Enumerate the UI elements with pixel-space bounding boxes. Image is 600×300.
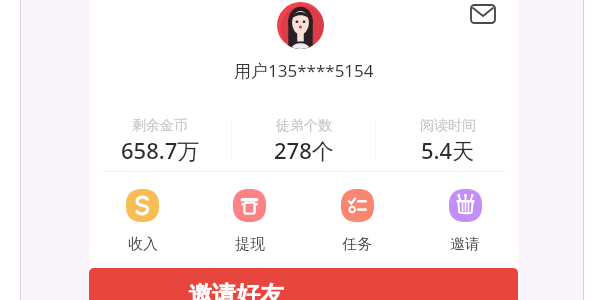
staticText: 658.7万 xyxy=(121,135,200,165)
button[interactable]: 任务 xyxy=(303,189,411,254)
staticText: 278个 xyxy=(274,135,334,165)
staticText: 阅读时间 xyxy=(420,117,476,135)
staticText: 邀请好友 xyxy=(188,280,284,300)
staticText: 邀请 xyxy=(450,235,480,254)
staticText: 5.4天 xyxy=(421,135,475,165)
staticText: 用户135****5154 xyxy=(234,59,374,82)
button[interactable]: 邀请 xyxy=(411,189,519,254)
button[interactable]: 提现 xyxy=(196,189,303,254)
button[interactable]: Profile avatar xyxy=(277,2,324,49)
staticText: 徒弟个数 xyxy=(276,117,332,135)
staticText: 剩余金币 xyxy=(132,117,188,135)
button[interactable]: Messages xyxy=(464,0,502,33)
button[interactable]: 邀请好友 xyxy=(89,268,518,300)
staticText: 提现 xyxy=(235,235,265,254)
button[interactable]: 收入 xyxy=(89,189,196,254)
button[interactable]: 徒弟个数 xyxy=(232,117,375,165)
button[interactable]: 剩余金币 xyxy=(89,117,231,165)
staticText: 收入 xyxy=(128,235,158,254)
button[interactable]: 阅读时间 xyxy=(376,117,519,165)
staticText: 任务 xyxy=(342,235,372,254)
